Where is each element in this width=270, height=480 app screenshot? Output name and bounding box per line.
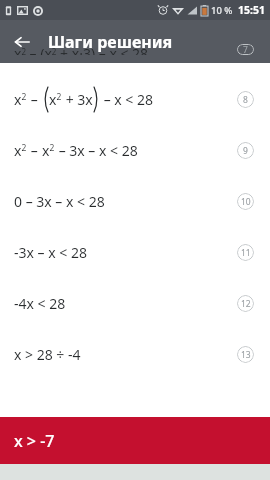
staticText: x > -7: [14, 430, 55, 452]
button[interactable]: x2: [0, 125, 270, 176]
staticText: 13: [241, 349, 251, 361]
button[interactable]: x > 28 ÷ -4: [0, 329, 270, 380]
staticText: 8: [243, 94, 248, 106]
staticText: x > 28 ÷ -4: [14, 345, 81, 364]
staticText: 9: [243, 145, 248, 157]
button[interactable]: x > -7: [0, 417, 270, 464]
staticText: 15:51: [238, 3, 265, 17]
button[interactable]: -4x < 28: [0, 278, 270, 329]
staticText: –: [27, 141, 42, 160]
staticText: x2: [14, 90, 27, 109]
staticText: x2: [49, 90, 62, 109]
staticText: –: [27, 90, 42, 109]
staticText: 10 %: [211, 4, 233, 17]
staticText: 7: [243, 44, 248, 55]
staticText: – 3x – x < 28: [55, 141, 138, 160]
staticText: – x < 28: [100, 90, 153, 109]
staticText: + 3x: [62, 90, 93, 109]
staticText: 12: [241, 298, 251, 310]
staticText: 11: [241, 247, 251, 259]
button[interactable]: 0 – 3x – x < 28: [0, 176, 270, 227]
staticText: x2: [14, 141, 27, 160]
staticText: x2 – (x2 + x·3) – x < 28: [14, 44, 149, 55]
staticText: 0 – 3x – x < 28: [14, 192, 105, 211]
staticText: -4x < 28: [14, 294, 66, 313]
button[interactable]: -3x – x < 28: [0, 227, 270, 278]
button[interactable]: Back: [6, 26, 38, 58]
staticText: x2: [42, 141, 55, 160]
staticText: -3x – x < 28: [14, 243, 87, 262]
button[interactable]: x2: [0, 74, 270, 125]
staticText: Шаги решения: [48, 31, 173, 53]
staticText: 10: [241, 196, 251, 208]
